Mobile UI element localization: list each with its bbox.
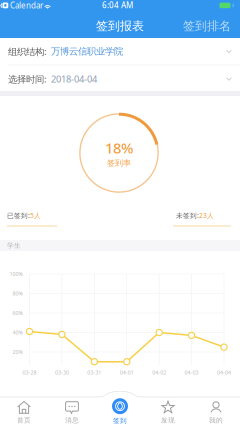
staticText: 学生 — [7, 241, 21, 250]
staticText: 选择时间: — [8, 73, 47, 85]
staticText: 03-30 — [55, 369, 69, 376]
staticText: 04-04 — [217, 369, 231, 376]
staticText: 首页 — [17, 416, 31, 424]
button[interactable]: 选择时间: — [0, 65, 240, 92]
button[interactable]: 签到报表 — [90, 15, 150, 37]
staticText: 签到报表 — [96, 19, 144, 33]
staticText: 80% — [13, 290, 23, 297]
staticText: 发现 — [161, 416, 175, 424]
button[interactable]: 消息 — [48, 395, 96, 426]
staticText: 20% — [13, 348, 23, 356]
staticText: 04-03 — [185, 369, 199, 376]
staticText: 万博云信职业学院 — [51, 46, 123, 57]
staticText: 5人 — [30, 211, 41, 220]
staticText: 23人 — [199, 211, 214, 220]
button[interactable]: 组织结构: — [0, 38, 240, 65]
staticText: Calendar — [10, 0, 43, 11]
staticText: 03-31 — [87, 369, 101, 376]
staticText: 2018-04-04 — [51, 73, 97, 85]
staticText: 04-01 — [120, 369, 134, 376]
staticText: 6:04 AM — [102, 0, 133, 10]
staticText: 100% — [10, 270, 23, 278]
staticText: 40% — [13, 329, 23, 336]
staticText: 消息 — [65, 416, 79, 424]
staticText: 03-28 — [22, 369, 36, 376]
button[interactable]: 签到 — [96, 394, 144, 426]
staticText: 60% — [13, 309, 23, 317]
staticText: 签到率 — [107, 158, 131, 168]
staticText: 签到 — [113, 417, 127, 425]
staticText: 组织结构: — [8, 45, 47, 58]
staticText: 04-02 — [152, 369, 166, 376]
staticText: 已签到: — [7, 211, 30, 220]
staticText: 我的 — [209, 416, 223, 424]
button[interactable]: 首页 — [0, 395, 48, 426]
button[interactable]: 我的 — [192, 395, 240, 426]
button[interactable]: 签到排名 — [180, 15, 234, 37]
staticText: 18% — [105, 138, 133, 158]
staticText: 签到排名 — [183, 19, 231, 33]
staticText: 未签到: — [176, 211, 199, 220]
button[interactable]: 发现 — [144, 395, 192, 426]
